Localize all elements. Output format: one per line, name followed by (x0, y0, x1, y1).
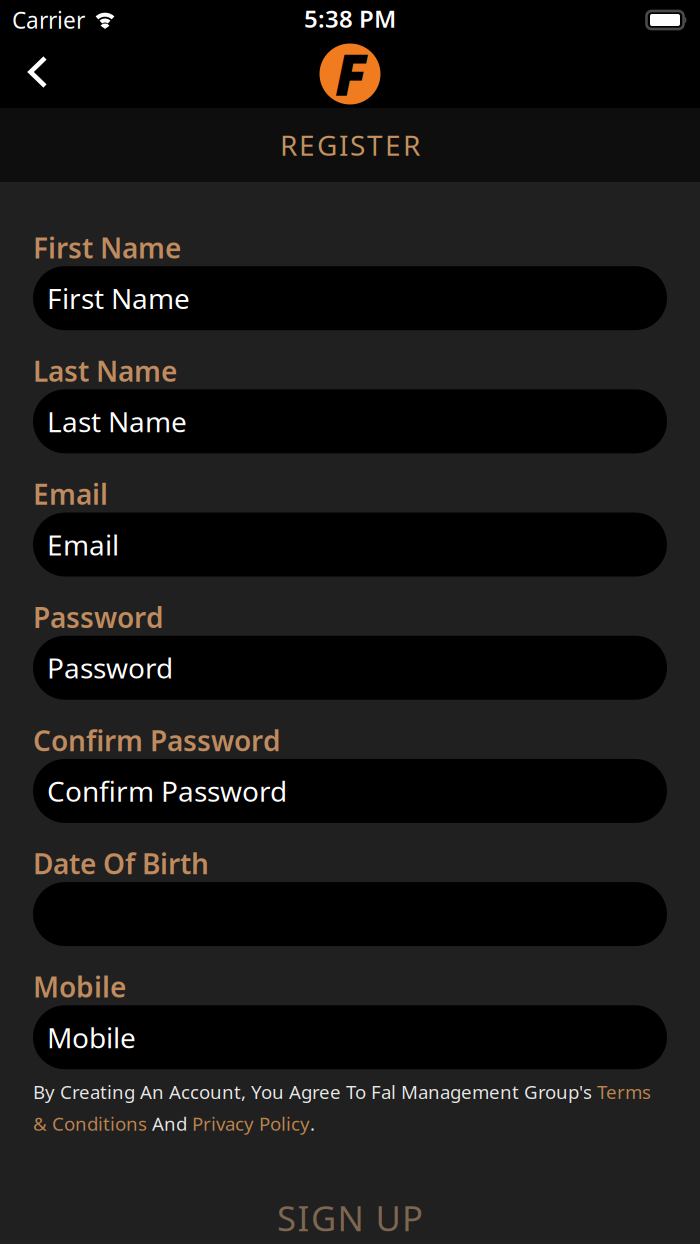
button[interactable]: Privacy Policy (192, 1111, 310, 1136)
staticText: & Conditions (33, 1111, 147, 1136)
button[interactable]: SIGN UP (0, 1195, 700, 1241)
button[interactable]: Email (33, 512, 667, 576)
button[interactable] (0, 57, 48, 90)
staticText: Password (47, 649, 173, 686)
staticText: SIGN UP (277, 1195, 423, 1241)
button[interactable]: & Conditions (33, 1111, 147, 1136)
staticText: By Creating An Account, You Agree To Fal… (33, 1079, 597, 1104)
button[interactable]: Mobile (33, 1005, 667, 1069)
button[interactable]: Last Name (33, 389, 667, 453)
staticText: Terms (597, 1079, 651, 1104)
staticText: Confirm Password (47, 772, 287, 809)
staticText: Confirm Password (33, 722, 281, 759)
staticText: Privacy Policy (192, 1111, 310, 1136)
button[interactable]: First Name (33, 266, 667, 330)
button[interactable] (33, 882, 667, 946)
staticText: Last Name (33, 352, 177, 389)
staticText: Password (33, 598, 164, 636)
staticText: First Name (47, 280, 190, 317)
staticText: First Name (33, 229, 181, 266)
staticText: REGISTER (280, 126, 420, 164)
staticText: Email (33, 475, 108, 513)
button[interactable]: Password (33, 636, 667, 700)
staticText: Carrier (12, 5, 85, 35)
staticText: Mobile (47, 1019, 136, 1056)
staticText: . (310, 1111, 315, 1136)
staticText: And (147, 1111, 192, 1136)
button[interactable]: Terms (597, 1079, 651, 1104)
staticText: F (335, 37, 367, 111)
staticText: Mobile (33, 968, 126, 1005)
staticText: Date Of Birth (33, 845, 209, 882)
staticText: Email (47, 526, 119, 563)
staticText: 5:38 PM (304, 3, 396, 34)
staticText: Last Name (47, 403, 187, 440)
button[interactable]: Confirm Password (33, 759, 667, 823)
